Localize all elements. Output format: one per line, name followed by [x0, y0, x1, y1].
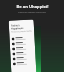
button[interactable]: [12, 40, 33, 47]
button[interactable]: [11, 35, 33, 42]
button[interactable]: [12, 50, 33, 56]
staticText: Find your people nearby: [11, 29, 32, 33]
staticText: Create the happiest community: [18, 11, 46, 14]
button[interactable]: [13, 60, 34, 66]
button[interactable]: [12, 45, 33, 52]
staticText: Today's Happiness: [11, 22, 32, 30]
button[interactable]: [12, 55, 34, 61]
staticText: Be an Uhappist!: [16, 4, 49, 10]
